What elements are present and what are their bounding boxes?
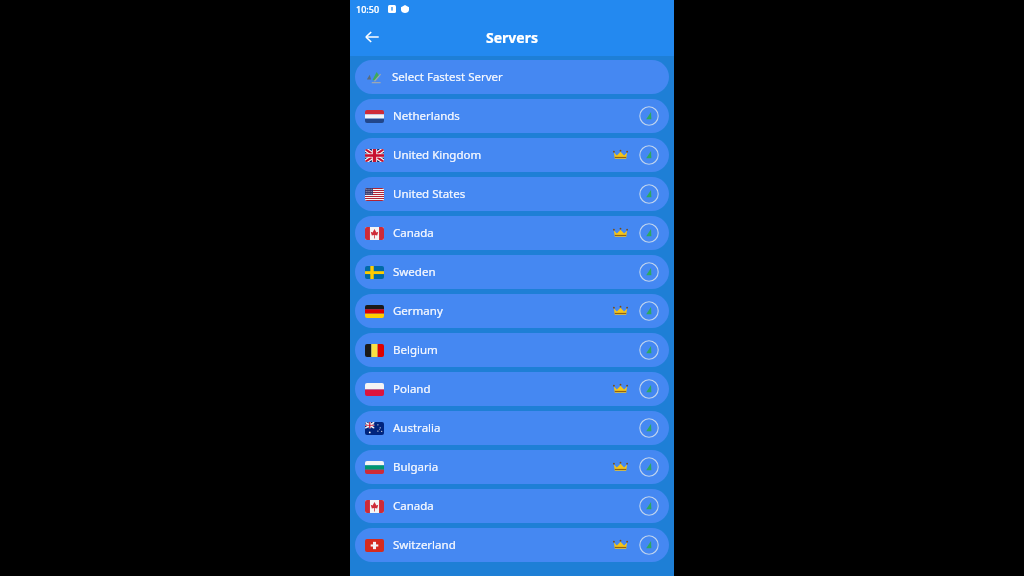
button[interactable]: Canada [355,489,669,523]
staticText: Select Fastest Server [392,69,503,85]
button[interactable]: Bulgaria [355,450,669,484]
staticText: United States [393,186,466,202]
button[interactable]: United Kingdom [355,138,669,172]
staticText: Sweden [393,264,436,280]
button[interactable]: Germany [355,294,669,328]
staticText: Canada [393,225,434,241]
staticText: Servers [486,28,538,47]
button[interactable]: Switzerland [355,528,669,562]
staticText: Bulgaria [393,459,439,475]
staticText: Belgium [393,342,438,358]
button[interactable]: Select Fastest Server [355,60,669,94]
button[interactable]: United States [355,177,669,211]
button[interactable]: Canada [355,216,669,250]
button[interactable]: Belgium [355,333,669,367]
staticText: Australia [393,420,441,436]
staticText: Poland [393,381,431,397]
staticText: Germany [393,303,443,319]
staticText: Canada [393,498,434,514]
button[interactable]: Australia [355,411,669,445]
staticText: United Kingdom [393,147,482,163]
button[interactable]: Back [358,23,386,51]
staticText: Netherlands [393,108,460,124]
button[interactable]: Poland [355,372,669,406]
staticText: Switzerland [393,537,456,553]
button[interactable]: Netherlands [355,99,669,133]
staticText: 10:50 [356,3,380,15]
button[interactable]: Sweden [355,255,669,289]
